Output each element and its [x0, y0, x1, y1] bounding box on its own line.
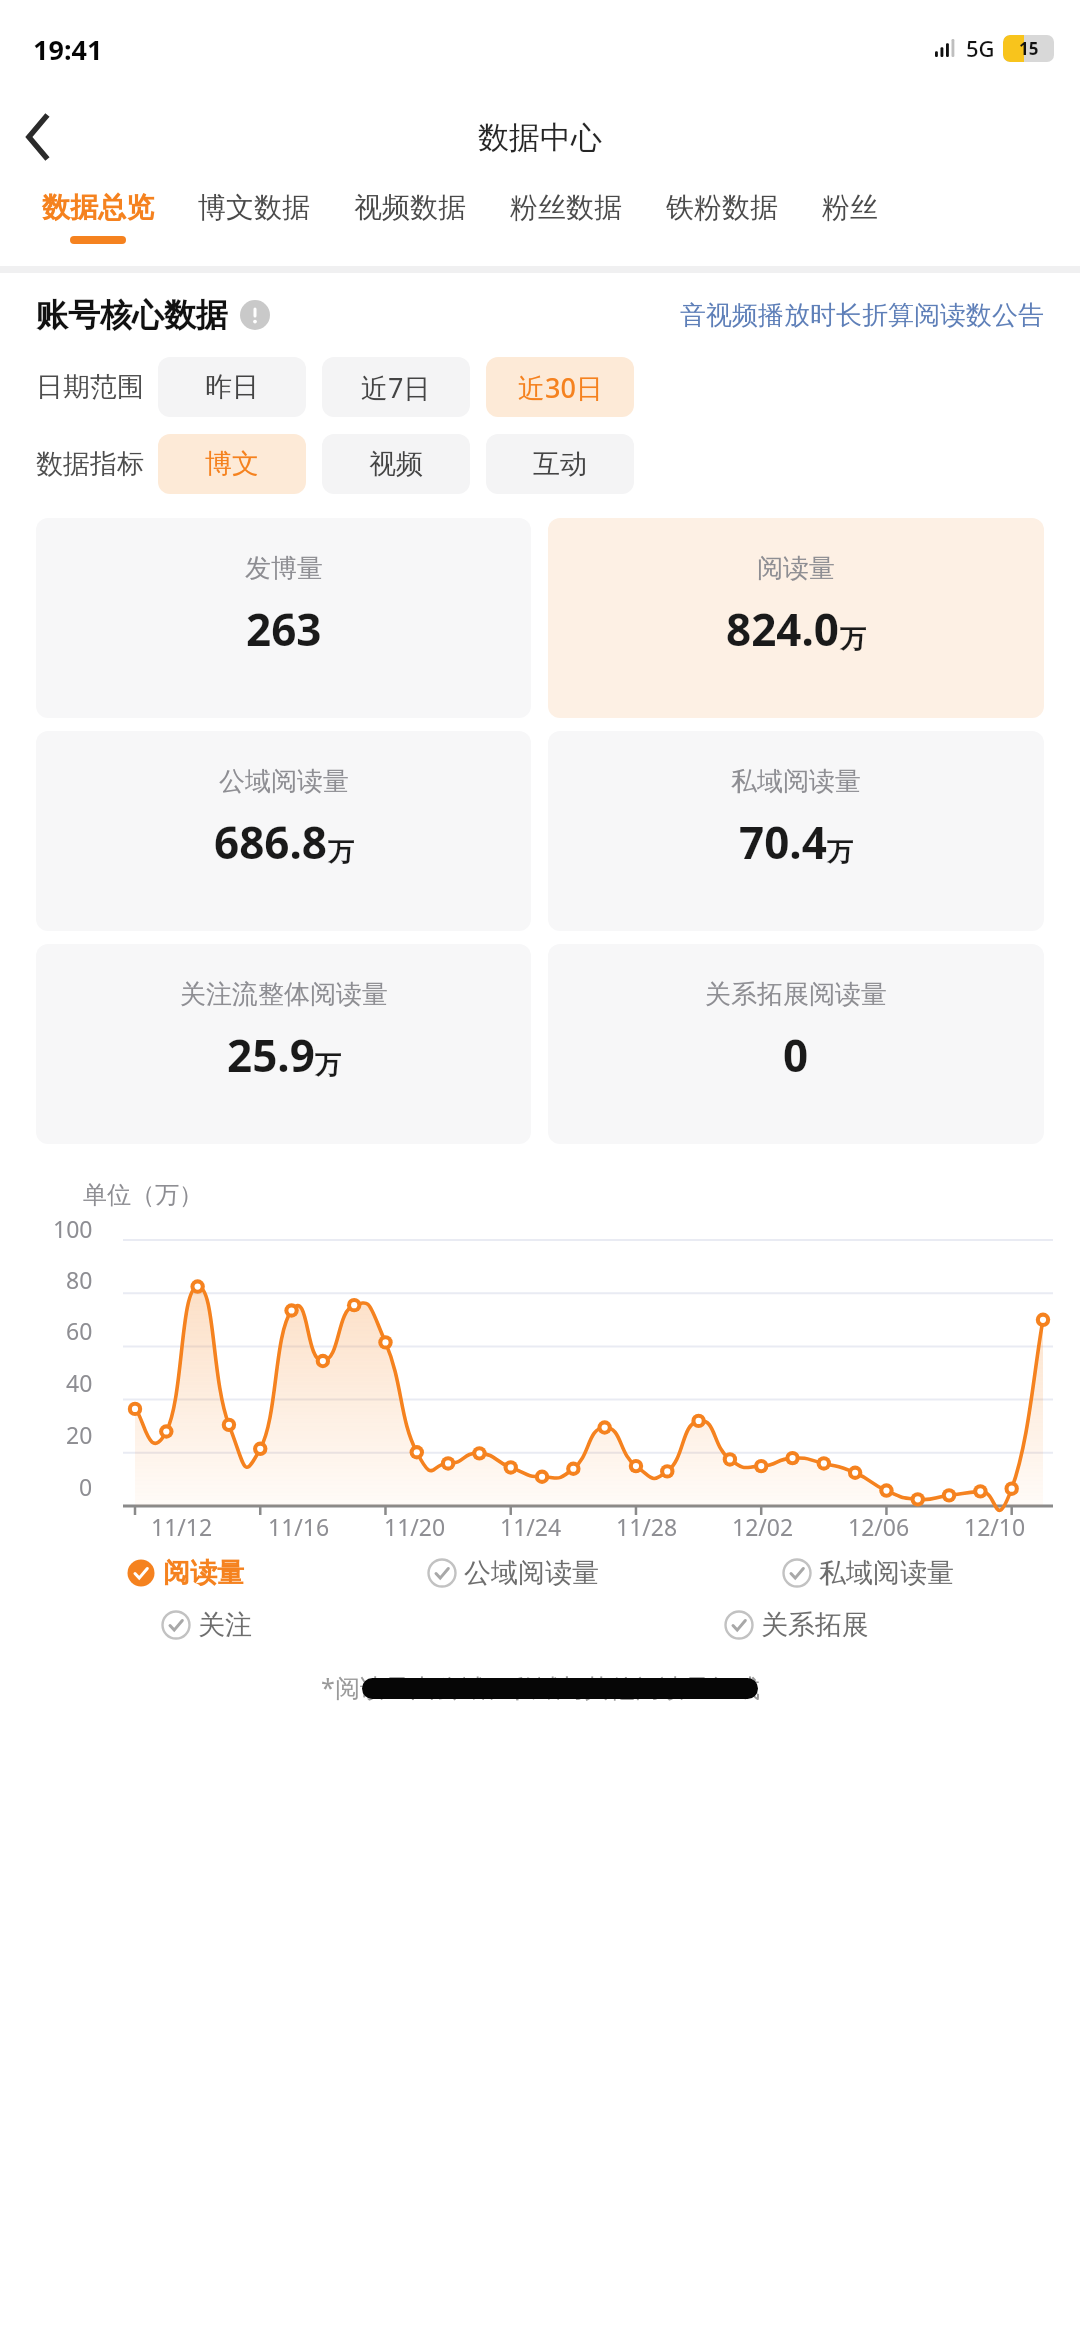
button[interactable]: 粉丝数据 [488, 178, 644, 266]
staticText: 互动 [533, 447, 587, 481]
staticText: 私域阅读量 [819, 1556, 954, 1590]
button[interactable]: 阅读量 [548, 518, 1044, 718]
staticText: 博文 [205, 447, 259, 481]
staticText: 数据中心 [478, 118, 602, 157]
staticText: 0 [79, 1471, 93, 1502]
staticText: 100 [53, 1213, 93, 1244]
button[interactable]: 发博量 [36, 518, 531, 718]
staticText: 12/06 [848, 1511, 910, 1542]
button[interactable]: 公域阅读量 [36, 731, 531, 931]
staticText: 铁粉数据 [666, 190, 778, 225]
button[interactable]: 关系拓展阅读量 [548, 944, 1044, 1144]
staticText: 万 [328, 836, 354, 869]
staticText: 40 [66, 1367, 93, 1398]
button[interactable]: 私域阅读量 [782, 1556, 954, 1590]
staticText: 263 [246, 599, 322, 659]
staticText: 12/10 [964, 1511, 1026, 1542]
staticText: 11/28 [616, 1511, 678, 1542]
staticText: 视频数据 [354, 190, 466, 225]
staticText: 5G [966, 33, 995, 63]
staticText: 数据指标 [36, 447, 144, 481]
staticText: 11/12 [151, 1511, 213, 1542]
staticText: 日期范围 [36, 370, 144, 404]
button[interactable]: Info [238, 298, 272, 332]
staticText: 公域阅读量 [219, 765, 349, 798]
staticText: 万 [315, 1049, 341, 1082]
staticText: 发博量 [245, 552, 323, 585]
staticText: 关系拓展 [761, 1608, 869, 1642]
staticText: 单位（万） [83, 1180, 203, 1210]
staticText: 音视频播放时长折算阅读数公告 [680, 299, 1044, 332]
staticText: 15 [1019, 37, 1039, 60]
staticText: 11/16 [268, 1511, 330, 1542]
staticText: 关注流整体阅读量 [180, 978, 388, 1011]
staticText: 11/24 [500, 1511, 562, 1542]
staticText: 80 [66, 1264, 93, 1295]
button[interactable]: 关注 [161, 1608, 252, 1642]
button[interactable]: 视频数据 [332, 178, 488, 266]
button[interactable]: 阅读量 [126, 1556, 244, 1590]
staticText: 关注 [198, 1608, 252, 1642]
staticText: 粉丝 [822, 190, 878, 225]
staticText: 私域阅读量 [731, 765, 861, 798]
button[interactable]: 公域阅读量 [427, 1556, 599, 1590]
button[interactable]: 近30日 [486, 357, 634, 417]
staticText: 60 [66, 1315, 93, 1346]
staticText: 粉丝数据 [510, 190, 622, 225]
staticText: 账号核心数据 [36, 295, 228, 335]
staticText: 数据总览 [42, 190, 154, 225]
staticText: 公域阅读量 [464, 1556, 599, 1590]
button[interactable]: 博文数据 [176, 178, 332, 266]
staticText: 19:41 [33, 31, 103, 68]
button[interactable]: 视频 [322, 434, 470, 494]
staticText: 近7日 [361, 369, 431, 406]
staticText: 阅读量 [163, 1556, 244, 1590]
staticText: 关系拓展阅读量 [705, 978, 887, 1011]
staticText: *阅读量由公域、私域与其他阅读量组成 [321, 1670, 760, 1704]
button[interactable]: 互动 [486, 434, 634, 494]
button[interactable]: 铁粉数据 [644, 178, 800, 266]
staticText: 昨日 [205, 370, 259, 404]
staticText: 万 [827, 836, 853, 869]
button[interactable]: Back [0, 99, 76, 175]
button[interactable]: 关注流整体阅读量 [36, 944, 531, 1144]
staticText: 视频 [369, 447, 423, 481]
button[interactable]: 音视频播放时长折算阅读数公告 [680, 299, 1044, 332]
staticText: 阅读量 [757, 552, 835, 585]
staticText: 11/20 [384, 1511, 446, 1542]
button[interactable]: 数据总览 [20, 178, 176, 266]
button[interactable]: 近7日 [322, 357, 470, 417]
staticText: 20 [66, 1419, 93, 1450]
staticText: 万 [840, 623, 866, 656]
staticText: 博文数据 [198, 190, 310, 225]
staticText: 12/02 [732, 1511, 794, 1542]
button[interactable]: 粉丝 [800, 178, 900, 266]
staticText: 25.9 [227, 1025, 315, 1085]
staticText: 686.8 [214, 812, 328, 872]
button[interactable]: 关系拓展 [724, 1608, 869, 1642]
staticText: 70.4 [739, 812, 827, 872]
staticText: 824.0 [726, 599, 840, 659]
button[interactable]: 博文 [158, 434, 306, 494]
button[interactable]: 私域阅读量 [548, 731, 1044, 931]
staticText: 近30日 [518, 369, 603, 406]
button[interactable]: 昨日 [158, 357, 306, 417]
staticText: 0 [783, 1025, 809, 1085]
